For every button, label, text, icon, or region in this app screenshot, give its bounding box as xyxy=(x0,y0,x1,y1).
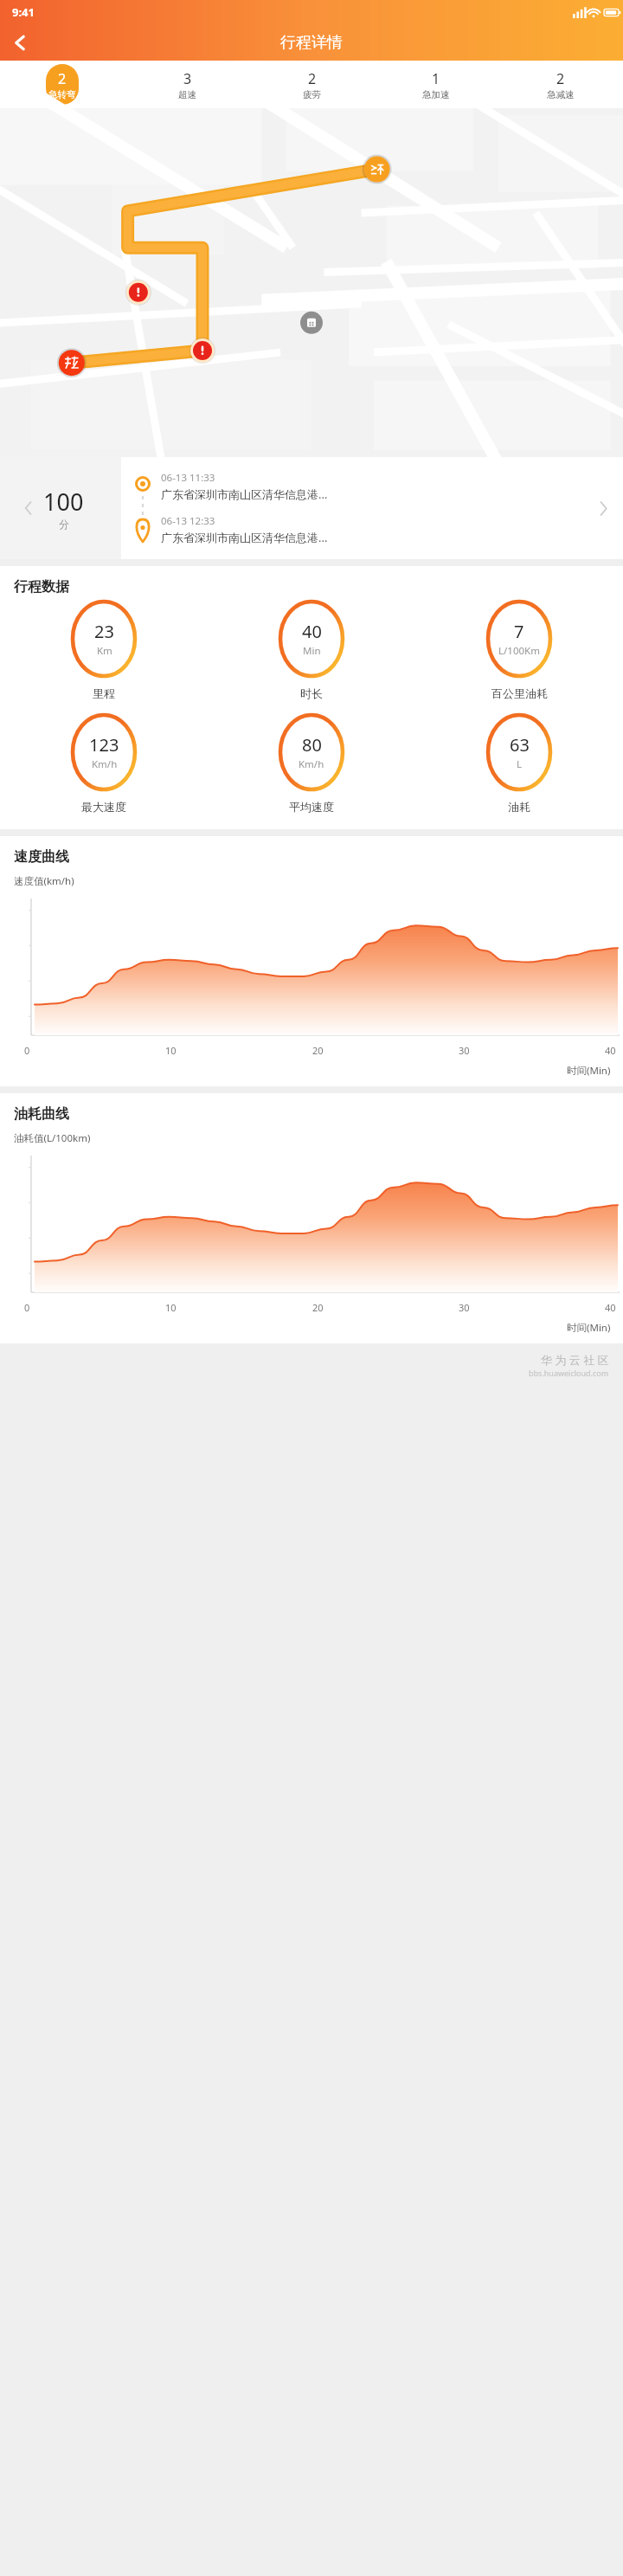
button[interactable]: 2 xyxy=(249,61,374,108)
staticText: bbs.huaweicloud.com xyxy=(529,1368,609,1378)
staticText: 40 xyxy=(605,1044,616,1057)
staticText: 123 xyxy=(89,733,119,757)
button[interactable]: 2 xyxy=(0,61,125,108)
button[interactable]: 7 xyxy=(415,599,623,700)
staticText: Km xyxy=(97,644,112,658)
staticText: 2 xyxy=(308,69,317,88)
staticText: 时间(Min) xyxy=(567,1321,611,1335)
button[interactable]: 23 xyxy=(0,599,208,700)
staticText: Km/h xyxy=(92,757,118,771)
staticText: 20 xyxy=(312,1044,324,1057)
staticText: Km/h xyxy=(299,757,324,771)
staticText: 油耗值(L/100km) xyxy=(14,1131,91,1145)
staticText: 最大速度 xyxy=(81,800,126,814)
staticText: 40 xyxy=(302,620,322,643)
button[interactable] xyxy=(0,108,623,457)
staticText: 超速 xyxy=(178,89,196,100)
staticText: 100 xyxy=(43,486,84,518)
staticText: 3 xyxy=(183,69,192,88)
button[interactable]: 63 xyxy=(415,712,623,814)
button[interactable]: 2 xyxy=(498,61,623,108)
staticText: 1 xyxy=(432,69,440,88)
staticText: 油耗 xyxy=(508,800,530,814)
staticText: 华 为 云 社 区 xyxy=(541,1352,609,1368)
staticText: 7 xyxy=(514,620,524,643)
staticText: 速度值(km/h) xyxy=(14,874,74,888)
staticText: 百公里油耗 xyxy=(491,686,548,700)
button[interactable]: 100 xyxy=(0,457,121,559)
button[interactable]: 1 xyxy=(374,61,498,108)
staticText: 速度曲线 xyxy=(14,848,69,866)
staticText: Min xyxy=(303,644,321,658)
staticText: 2 xyxy=(556,69,565,88)
staticText: 06-13 12:33 xyxy=(161,514,215,528)
staticText: 急加速 xyxy=(422,89,450,100)
button[interactable]: 3 xyxy=(125,61,249,108)
staticText: 20 xyxy=(312,1301,324,1314)
staticText: 10 xyxy=(165,1301,177,1314)
staticText: 疲劳 xyxy=(303,89,321,100)
button[interactable]: 80 xyxy=(208,712,415,814)
button[interactable]: Back xyxy=(0,24,40,61)
staticText: 80 xyxy=(302,733,322,757)
button[interactable]: 123 xyxy=(0,712,208,814)
staticText: 0 xyxy=(24,1044,30,1057)
staticText: 40 xyxy=(605,1301,616,1314)
staticText: 广东省深圳市南山区清华信息港... xyxy=(161,486,328,502)
staticText: 9:41 xyxy=(12,4,35,20)
staticText: 时长 xyxy=(300,686,323,700)
staticText: L/100Km xyxy=(498,644,540,658)
staticText: 行程详情 xyxy=(280,33,343,53)
staticText: 23 xyxy=(94,620,114,643)
staticText: 里程 xyxy=(93,686,115,700)
staticText: L xyxy=(517,757,523,771)
staticText: 30 xyxy=(459,1301,470,1314)
button[interactable]: Next trip xyxy=(588,457,618,559)
staticText: 平均速度 xyxy=(289,800,334,814)
staticText: 63 xyxy=(510,733,530,757)
staticText: 行程数据 xyxy=(14,578,69,596)
staticText: 2 xyxy=(58,69,67,88)
button[interactable]: 40 xyxy=(208,599,415,700)
staticText: 06-13 11:33 xyxy=(161,471,215,485)
staticText: 急转弯 xyxy=(48,89,76,100)
staticText: 30 xyxy=(459,1044,470,1057)
staticText: 时间(Min) xyxy=(567,1064,611,1078)
staticText: 急减速 xyxy=(547,89,575,100)
staticText: 0 xyxy=(24,1301,30,1314)
staticText: 广东省深圳市南山区清华信息港... xyxy=(161,530,328,545)
staticText: 10 xyxy=(165,1044,177,1057)
staticText: 分 xyxy=(59,518,69,531)
staticText: 油耗曲线 xyxy=(14,1105,69,1123)
